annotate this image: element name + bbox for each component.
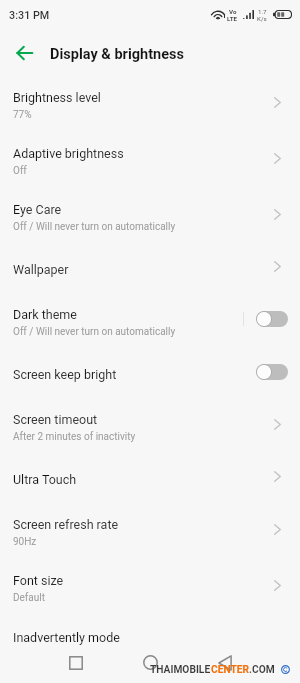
button[interactable]: Wallpaper	[0, 242, 300, 291]
button[interactable]: Back	[204, 642, 245, 683]
button[interactable]: Dark theme	[0, 291, 300, 347]
staticText: THAIMOBILE	[150, 664, 211, 676]
staticText: Eye Care	[13, 202, 62, 217]
staticText: 3:31 PM	[9, 9, 50, 22]
staticText: After 2 minutes of inactivity	[13, 431, 136, 443]
staticText: Screen refresh rate	[13, 517, 119, 532]
staticText: Adaptive brightness	[13, 146, 124, 161]
staticText: 90Hz	[13, 536, 37, 548]
button[interactable]: Screen timeout	[0, 396, 300, 452]
button[interactable]: Recent apps	[55, 642, 96, 683]
staticText: Font size	[13, 573, 64, 588]
button[interactable]: Home	[130, 642, 171, 683]
staticText: LTE	[227, 15, 238, 22]
button[interactable]: Inadvertently mode	[0, 613, 300, 669]
staticText: K/s	[257, 15, 267, 22]
staticText: Screen keep bright	[13, 367, 117, 382]
staticText: Ultra Touch	[13, 472, 77, 487]
staticText: 77%	[13, 109, 32, 121]
button[interactable]: Adaptive brightness	[0, 130, 300, 186]
staticText: Brightness level	[13, 90, 101, 105]
button[interactable]: Back	[2, 30, 46, 76]
staticText: Dark theme	[13, 307, 77, 322]
staticText: Off / Will never turn on automatically	[13, 326, 176, 338]
button[interactable]: Toggle Screen keep bright	[256, 364, 288, 380]
staticText: 1.7	[258, 8, 267, 15]
button[interactable]: Ultra Touch	[0, 452, 300, 501]
staticText: Inadvertently mode	[13, 630, 120, 645]
staticText: Display & brightness	[50, 46, 184, 63]
staticText: Screen timeout	[13, 412, 98, 427]
staticText: Off / Will never turn on automatically	[13, 221, 176, 233]
button[interactable]: Screen refresh rate	[0, 501, 300, 557]
button[interactable]: Eye Care	[0, 186, 300, 242]
button[interactable]: Screen keep bright	[0, 347, 300, 396]
staticText: CENTER	[211, 664, 249, 676]
button[interactable]: Font size	[0, 557, 300, 613]
staticText: Vo	[229, 8, 237, 15]
button[interactable]: Brightness level	[0, 74, 300, 130]
staticText: Wallpaper	[13, 262, 69, 277]
staticText: .COM	[249, 664, 275, 676]
staticText: Off	[13, 165, 27, 177]
staticText: Default	[13, 592, 45, 604]
button[interactable]: Toggle Dark theme	[256, 311, 288, 327]
